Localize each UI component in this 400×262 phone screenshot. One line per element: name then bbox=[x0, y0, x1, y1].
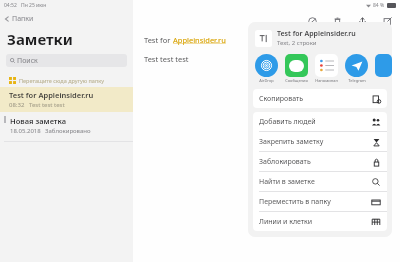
button[interactable]: Новая заметка bbox=[0, 112, 133, 138]
staticText: Test for bbox=[144, 35, 173, 45]
staticText: Переместить в папку bbox=[259, 197, 371, 207]
button[interactable]: Ещё bbox=[375, 54, 392, 77]
button[interactable]: Найти в заметке bbox=[253, 172, 387, 191]
staticText: Сообщения bbox=[285, 78, 308, 83]
button[interactable]: Линии и клетки bbox=[253, 212, 387, 231]
staticText: AirDrop bbox=[259, 78, 274, 83]
button[interactable]: Share bbox=[355, 14, 369, 28]
button[interactable]: Переместить в папку bbox=[253, 192, 387, 211]
button[interactable]: Telegram bbox=[345, 54, 368, 83]
staticText: Закрепить заметку bbox=[259, 137, 371, 147]
staticText: Test for Appleinsider.ru bbox=[9, 90, 94, 100]
staticText: Заблокировать bbox=[259, 157, 371, 167]
staticText: Appleinsider.ru bbox=[173, 35, 226, 45]
staticText: Линии и клетки bbox=[259, 217, 371, 227]
staticText: Заблокировано bbox=[45, 127, 91, 135]
button[interactable]: Перетащите сюда другую папку bbox=[0, 73, 133, 87]
staticText: 84 % bbox=[373, 2, 385, 9]
button[interactable]: AirDrop bbox=[255, 54, 278, 83]
staticText: Test test test bbox=[29, 101, 65, 109]
staticText: Найти в заметке bbox=[259, 177, 371, 187]
staticText: Поиск bbox=[17, 56, 38, 66]
staticText: Test test test bbox=[144, 54, 189, 64]
button[interactable]: Test for Appleinsider.ru bbox=[248, 22, 392, 54]
staticText: Добавить людей bbox=[259, 117, 371, 127]
button[interactable]: New note bbox=[380, 14, 394, 28]
button[interactable]: Поиск bbox=[6, 54, 127, 67]
button[interactable]: Напоминания bbox=[315, 54, 338, 83]
staticText: 08:32 bbox=[9, 101, 25, 109]
staticText: 04:52 bbox=[4, 2, 17, 9]
staticText: Text, 2 строки bbox=[277, 39, 317, 47]
button[interactable]: Закрепить заметку bbox=[253, 132, 387, 151]
staticText: Test for Appleinsider.ru bbox=[277, 29, 356, 39]
staticText: Заметки bbox=[7, 29, 73, 49]
button[interactable]: Добавить людей bbox=[253, 112, 387, 131]
staticText: Напоминания bbox=[315, 78, 338, 83]
button[interactable]: Заблокировать bbox=[253, 152, 387, 171]
staticText: Новая заметка bbox=[10, 116, 67, 126]
button[interactable]: Test for Appleinsider.ru bbox=[0, 87, 133, 112]
button[interactable]: Сообщения bbox=[285, 54, 308, 83]
staticText: Папки bbox=[12, 14, 34, 24]
button[interactable]: Markup bbox=[305, 14, 319, 28]
button[interactable]: Delete bbox=[330, 14, 344, 28]
button[interactable]: Папки bbox=[0, 11, 133, 26]
button[interactable]: Скопировать bbox=[253, 89, 387, 108]
staticText: Telegram bbox=[348, 78, 366, 83]
staticText: 18.05.2018 bbox=[10, 127, 41, 135]
staticText: Пн 25 июн bbox=[21, 2, 47, 9]
staticText: Перетащите сюда другую папку bbox=[19, 77, 104, 84]
staticText: Скопировать bbox=[259, 94, 371, 104]
